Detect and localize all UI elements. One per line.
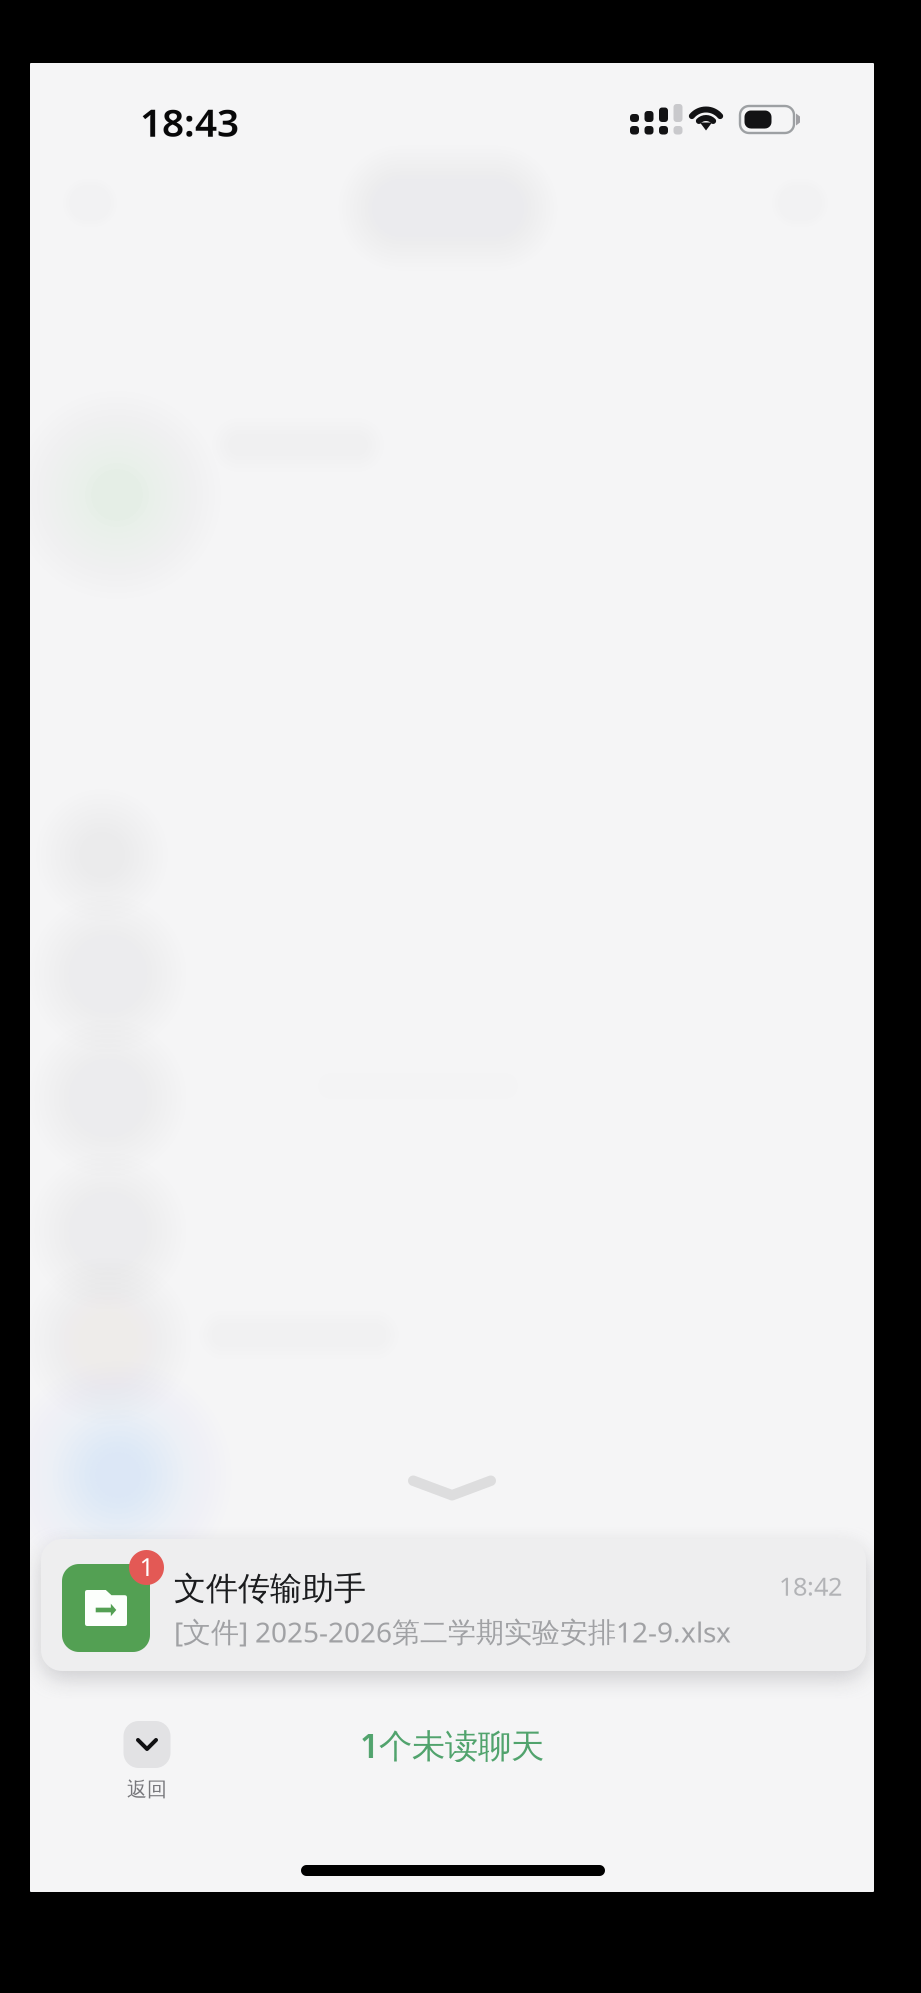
staticText: 1个未读聊天 bbox=[360, 1723, 544, 1767]
staticText: 18:42 bbox=[779, 1569, 842, 1603]
staticText: 18:43 bbox=[140, 96, 239, 147]
button[interactable]: 返回 bbox=[82, 1721, 212, 1841]
staticText: 文件传输助手 bbox=[174, 1569, 366, 1608]
staticText: 返回 bbox=[127, 1777, 167, 1802]
staticText: [文件] 2025-2026第二学期实验安排12-9.xlsx bbox=[174, 1613, 731, 1650]
button[interactable]: 收起 bbox=[388, 1455, 516, 1521]
button[interactable]: 1个未读聊天 bbox=[282, 1715, 622, 1775]
staticText: 1 bbox=[139, 1550, 153, 1583]
button[interactable]: 1 bbox=[41, 1539, 866, 1671]
